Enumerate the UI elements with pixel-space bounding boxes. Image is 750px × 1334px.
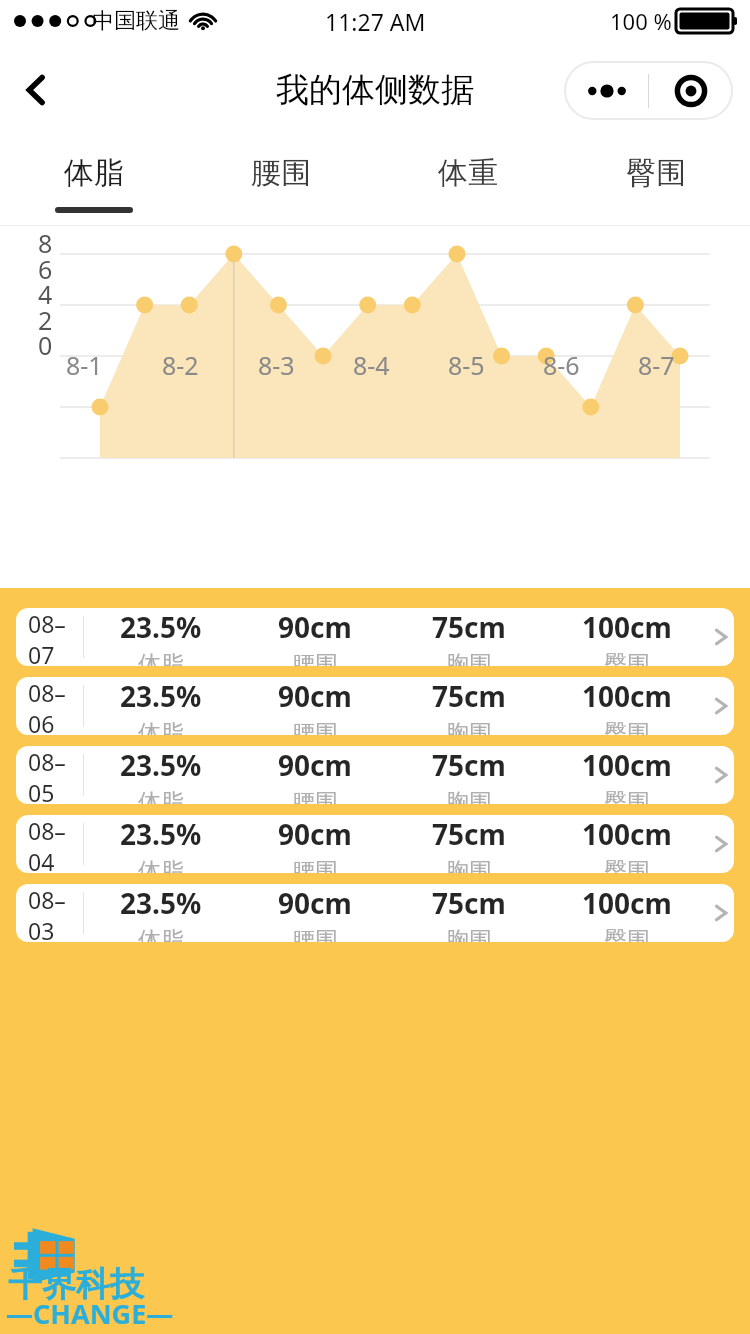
staticText: 体重 [438, 154, 498, 192]
staticText: 千界科技 [8, 1263, 144, 1306]
staticText: 90cm [278, 884, 352, 922]
staticText: 8-6 [543, 348, 580, 382]
staticText: 体脂 [64, 154, 124, 192]
staticText: 0 [38, 328, 53, 362]
staticText: 75cm [432, 608, 506, 646]
button[interactable]: 08–06 [16, 677, 734, 735]
staticText: 100cm [582, 746, 672, 784]
staticText: 臀围 [604, 926, 650, 942]
staticText: 臀围 [604, 857, 650, 873]
button[interactable]: 08–04 [16, 815, 734, 873]
staticText: 75cm [432, 677, 506, 715]
staticText: 08–05 [28, 746, 83, 804]
staticText: 中国联通 [92, 7, 180, 35]
staticText: 100cm [582, 815, 672, 853]
staticText: 08–06 [28, 677, 83, 735]
staticText: 体脂 [138, 788, 184, 804]
staticText: 胸围 [446, 926, 492, 942]
staticText: 23.5% [120, 815, 202, 853]
staticText: 臀围 [626, 154, 686, 192]
staticText: 腰围 [292, 788, 338, 804]
staticText: 胸围 [446, 857, 492, 873]
staticText: 腰围 [292, 857, 338, 873]
staticText: 胸围 [446, 719, 492, 735]
staticText: 8-7 [638, 348, 675, 382]
button[interactable]: Back [8, 62, 64, 118]
staticText: 23.5% [120, 884, 202, 922]
staticText: 23.5% [120, 608, 202, 646]
button[interactable]: 体重 [374, 138, 562, 226]
staticText: 腰围 [292, 650, 338, 666]
staticText: 腰围 [292, 719, 338, 735]
staticText: 8 [38, 226, 53, 260]
staticText: 臀围 [604, 650, 650, 666]
staticText: 08–04 [28, 815, 83, 873]
staticText: 腰围 [251, 154, 311, 192]
button[interactable]: 体脂 [0, 138, 187, 226]
staticText: 100cm [582, 884, 672, 922]
staticText: 6 [38, 252, 53, 286]
staticText: 75cm [432, 815, 506, 853]
staticText: 08–03 [28, 884, 83, 942]
button[interactable]: 08–05 [16, 746, 734, 804]
button[interactable]: 腰围 [187, 138, 374, 226]
staticText: 08–07 [28, 608, 83, 666]
staticText: 23.5% [120, 746, 202, 784]
staticText: 8-5 [448, 348, 485, 382]
staticText: 90cm [278, 746, 352, 784]
staticText: 8-3 [258, 348, 295, 382]
staticText: 8-1 [66, 348, 103, 382]
staticText: 臀围 [604, 719, 650, 735]
staticText: 胸围 [446, 650, 492, 666]
button[interactable]: 臀围 [562, 138, 750, 226]
staticText: 臀围 [604, 788, 650, 804]
staticText: 我的体侧数据 [276, 69, 474, 111]
button[interactable]: 08–07 [16, 608, 734, 666]
staticText: 体脂 [138, 926, 184, 942]
staticText: 体脂 [138, 650, 184, 666]
staticText: 23.5% [120, 677, 202, 715]
staticText: —CHANGE— [6, 1295, 174, 1332]
staticText: 100 % [610, 6, 672, 36]
staticText: 90cm [278, 608, 352, 646]
staticText: 90cm [278, 677, 352, 715]
staticText: 90cm [278, 815, 352, 853]
staticText: 100cm [582, 608, 672, 646]
staticText: 8-4 [353, 348, 390, 382]
staticText: 75cm [432, 884, 506, 922]
staticText: 75cm [432, 746, 506, 784]
staticText: 8-2 [162, 348, 199, 382]
staticText: 腰围 [292, 926, 338, 942]
staticText: 体脂 [138, 719, 184, 735]
staticText: 4 [38, 277, 53, 311]
button[interactable]: Menu [565, 62, 732, 119]
staticText: 胸围 [446, 788, 492, 804]
staticText: 11:27 AM [325, 6, 426, 37]
staticText: 体脂 [138, 857, 184, 873]
button[interactable]: 08–03 [16, 884, 734, 942]
staticText: 2 [38, 303, 53, 337]
staticText: 100cm [582, 677, 672, 715]
